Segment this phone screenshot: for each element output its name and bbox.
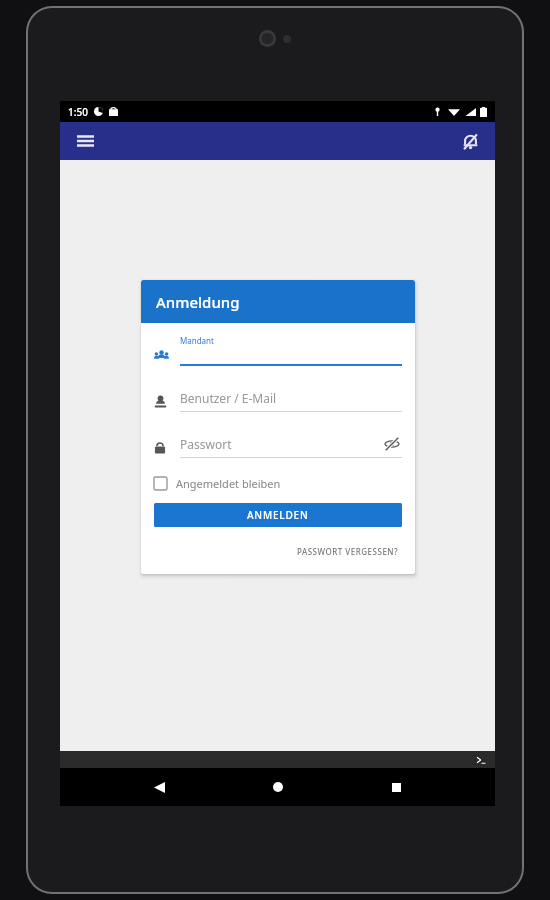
button[interactable]: Terminal [474, 753, 488, 767]
staticText: Mandant [180, 335, 214, 346]
button[interactable]: Show password [382, 434, 402, 454]
staticText: Anmeldung [156, 292, 240, 312]
button[interactable]: Notifications off [455, 126, 485, 156]
button[interactable]: Home [258, 768, 298, 806]
staticText: ANMELDEN [247, 508, 309, 522]
staticText: 1:50 [68, 105, 88, 119]
button[interactable]: Back [139, 768, 179, 806]
button[interactable]: Recents [376, 768, 416, 806]
staticText: PASSWORT VERGESSEN? [297, 546, 399, 557]
button[interactable]: PASSWORT VERGESSEN? [294, 543, 402, 560]
button[interactable]: ANMELDEN [154, 503, 402, 527]
button[interactable]: Angemeldet bleiben [154, 474, 281, 493]
staticText: Angemeldet bleiben [176, 476, 281, 491]
staticText: Passwort [180, 436, 382, 452]
staticText: Benutzer / E-Mail [180, 390, 277, 406]
button[interactable]: Menu [70, 126, 100, 156]
